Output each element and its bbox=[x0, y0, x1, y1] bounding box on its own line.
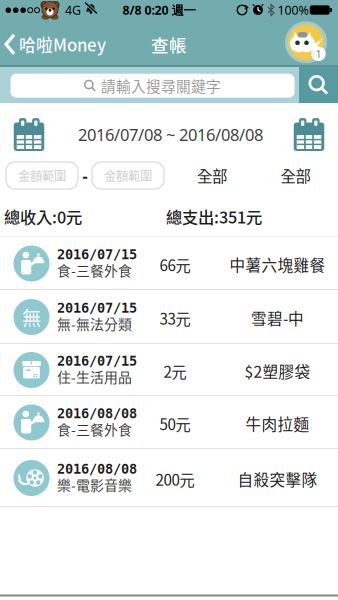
staticText: 總收入:0元 bbox=[4, 205, 82, 228]
button[interactable]: 2016/07/15 bbox=[0, 344, 338, 396]
staticText: 2016/08/08 bbox=[57, 406, 137, 421]
button[interactable]: 無 bbox=[0, 290, 338, 344]
staticText: 2016/07/08 ~ 2016/08/08 bbox=[78, 123, 263, 146]
staticText: 食-三餐外食 bbox=[57, 260, 132, 280]
staticText: 2元 bbox=[163, 360, 186, 382]
staticText: 樂-電影音樂 bbox=[57, 474, 132, 495]
staticText: 全部 bbox=[197, 164, 227, 187]
staticText: 2016/07/15 bbox=[57, 353, 137, 369]
staticText: 請輸入搜尋關鍵字 bbox=[101, 75, 221, 96]
button[interactable]: 搜尋欄 bbox=[10, 74, 294, 98]
button[interactable]: 2016/07/15 bbox=[0, 237, 338, 290]
staticText: $2塑膠袋 bbox=[244, 360, 310, 382]
button[interactable]: 2016/08/08 bbox=[0, 449, 338, 507]
staticText: 2016/07/15 bbox=[57, 247, 137, 262]
staticText: - bbox=[82, 165, 87, 186]
button[interactable]: 返回 哈啦Money bbox=[4, 27, 114, 61]
staticText: 2016/07/15 bbox=[57, 300, 137, 316]
button[interactable]: 全部 bbox=[182, 162, 242, 189]
button[interactable]: 搜尋 bbox=[299, 67, 338, 103]
staticText: 無 bbox=[22, 303, 41, 331]
staticText: 住-生活用品 bbox=[57, 366, 132, 387]
staticText: 33元 bbox=[159, 307, 190, 329]
staticText: 雪碧-中 bbox=[251, 307, 304, 329]
staticText: 金額範圍 bbox=[104, 167, 152, 184]
staticText: 總支出:351元 bbox=[166, 205, 262, 228]
staticText: 牛肉拉麵 bbox=[245, 412, 309, 435]
staticText: 200元 bbox=[155, 468, 194, 490]
button[interactable]: 全部 bbox=[265, 162, 325, 189]
button[interactable]: 帳號 bbox=[285, 21, 327, 63]
staticText: 金額範圍 bbox=[18, 167, 66, 184]
staticText: 2016/08/08 bbox=[57, 461, 137, 477]
button[interactable]: 選擇開始日期 bbox=[14, 118, 44, 151]
staticText: 無-無法分類 bbox=[57, 313, 132, 334]
staticText: 哈啦Money bbox=[19, 32, 106, 56]
staticText: 自殺突擊隊 bbox=[237, 468, 317, 490]
button[interactable]: 最高金額 bbox=[92, 162, 164, 189]
staticText: 100% bbox=[277, 2, 308, 18]
staticText: 66元 bbox=[159, 253, 190, 275]
staticText: 50元 bbox=[159, 412, 190, 434]
staticText: 4G bbox=[65, 2, 81, 18]
staticText: 8/8 0:20 週一 bbox=[122, 2, 195, 18]
button[interactable]: 最低金額 bbox=[6, 162, 78, 189]
staticText: 食-三餐外食 bbox=[57, 419, 132, 439]
staticText: 中薯六塊雞餐 bbox=[229, 253, 325, 276]
button[interactable]: 選擇結束日期 bbox=[294, 118, 324, 151]
staticText: 1 bbox=[315, 46, 321, 61]
button[interactable]: 2016/08/08 bbox=[0, 396, 338, 449]
staticText: 全部 bbox=[280, 164, 310, 187]
staticText: 查帳 bbox=[151, 32, 187, 57]
